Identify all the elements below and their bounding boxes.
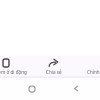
button[interactable]: Back: [71, 83, 81, 93]
staticText: Chia sẻ: [46, 69, 62, 75]
staticText: xem ở di động: [0, 69, 27, 75]
button[interactable]: [41, 57, 65, 78]
button[interactable]: Home: [27, 83, 37, 93]
button[interactable]: Chỉnh sửa: [88, 57, 100, 78]
staticText: Chỉnh sửa: [87, 69, 100, 75]
button[interactable]: [0, 57, 22, 78]
